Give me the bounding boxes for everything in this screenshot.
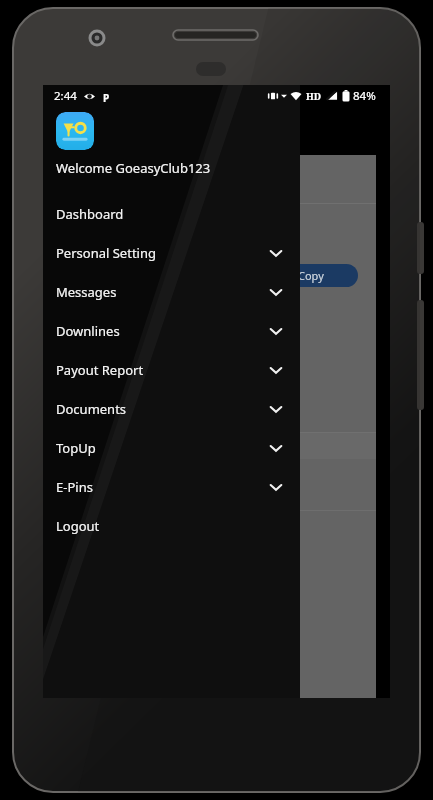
staticText: Copy bbox=[298, 268, 324, 283]
button[interactable]: Payout Report bbox=[43, 350, 300, 389]
button[interactable]: TopUp bbox=[43, 428, 300, 467]
button[interactable]: Logout bbox=[43, 506, 300, 545]
staticText: Welcome GoeasyClub123 bbox=[56, 159, 211, 177]
button[interactable]: Documents bbox=[43, 389, 300, 428]
button[interactable]: Downlines bbox=[43, 311, 300, 350]
staticText: 84% bbox=[353, 88, 376, 104]
staticText: HD bbox=[306, 90, 322, 103]
staticText: 2:44 bbox=[54, 88, 77, 104]
staticText: Personal Setting bbox=[56, 244, 156, 262]
button[interactable]: Dashboard bbox=[43, 194, 300, 233]
staticText: Logout bbox=[56, 517, 100, 535]
staticText: P bbox=[103, 91, 110, 102]
staticText: Payout Report bbox=[56, 361, 144, 379]
button[interactable]: Messages bbox=[43, 272, 300, 311]
button[interactable]: Copy bbox=[263, 264, 358, 287]
button[interactable]: App logo bbox=[56, 112, 94, 150]
staticText: Downlines bbox=[56, 322, 120, 340]
staticText: Dashboard bbox=[56, 205, 124, 223]
staticText: Documents bbox=[56, 400, 127, 418]
button[interactable]: Personal Setting bbox=[43, 233, 300, 272]
button[interactable]: E-Pins bbox=[43, 467, 300, 506]
staticText: TopUp bbox=[56, 439, 96, 457]
staticText: Messages bbox=[56, 283, 117, 301]
staticText: E-Pins bbox=[56, 478, 93, 496]
